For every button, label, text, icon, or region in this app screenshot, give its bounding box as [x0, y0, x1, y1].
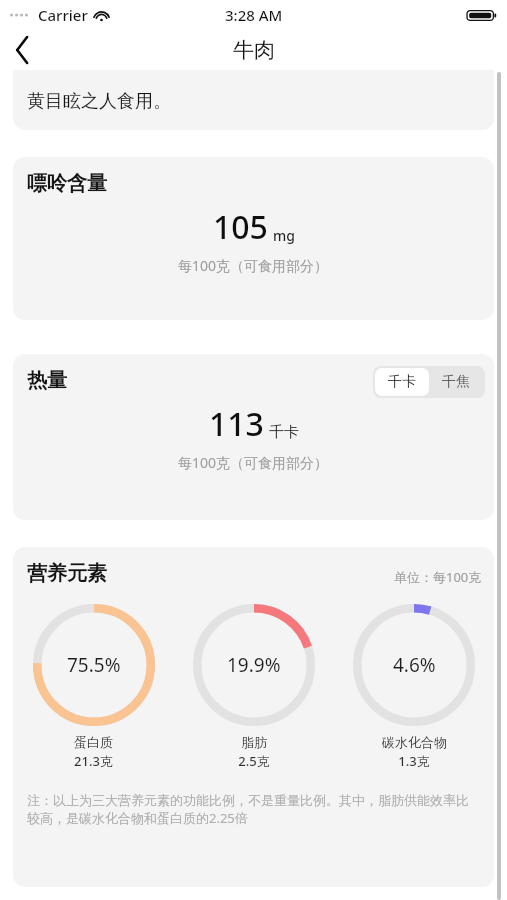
staticText: 脂肪: [241, 734, 267, 750]
staticText: 牛肉: [233, 37, 275, 63]
staticText: 2.5克: [238, 752, 270, 770]
staticText: 113: [209, 402, 264, 446]
staticText: 黄目眩之人食用。: [27, 90, 171, 113]
staticText: 热量: [27, 368, 67, 393]
staticText: 105: [213, 205, 268, 249]
button[interactable]: 黄目眩之人食用。: [13, 70, 494, 130]
staticText: 碳水化合物: [382, 734, 447, 750]
staticText: 每100克（可食用部分）: [178, 256, 329, 275]
button[interactable]: 热量: [13, 354, 494, 520]
staticText: 1.3克: [398, 752, 430, 770]
staticText: mg: [273, 226, 295, 245]
button[interactable]: 千卡: [375, 368, 429, 396]
staticText: 千焦: [442, 373, 470, 391]
staticText: 千卡: [388, 373, 416, 391]
staticText: Carrier: [38, 5, 88, 25]
staticText: 注：以上为三大营养元素的功能比例，不是重量比例。其中，脂肪供能效率比较高，是碳水…: [27, 792, 476, 827]
staticText: 单位：每100克: [394, 568, 482, 586]
button[interactable]: 营养元素: [13, 547, 494, 887]
button[interactable]: 嘌呤含量: [13, 157, 494, 320]
button[interactable]: 千焦: [429, 368, 483, 396]
staticText: 蛋白质: [74, 734, 113, 750]
staticText: 千卡: [269, 423, 299, 442]
button[interactable]: Back: [0, 30, 44, 70]
staticText: 75.5%: [67, 652, 121, 678]
staticText: 19.9%: [227, 652, 281, 678]
staticText: 3:28 AM: [225, 5, 283, 25]
staticText: 4.6%: [393, 652, 436, 678]
staticText: 营养元素: [27, 561, 107, 586]
staticText: 嘌呤含量: [27, 171, 107, 196]
staticText: 21.3克: [74, 752, 113, 770]
staticText: 每100克（可食用部分）: [178, 453, 329, 472]
